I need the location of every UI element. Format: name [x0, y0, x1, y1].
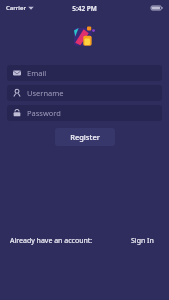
staticText: Register	[70, 132, 100, 142]
staticText: Sign In	[131, 236, 154, 246]
button[interactable]: Password	[7, 105, 162, 121]
staticText: Already have an account:	[10, 236, 93, 246]
button[interactable]: Username	[7, 85, 162, 101]
button[interactable]: Register	[55, 128, 115, 146]
staticText: Email	[27, 68, 47, 78]
other: Password	[13, 109, 21, 117]
staticText: Carrier	[6, 4, 26, 12]
staticText: Password	[27, 108, 61, 118]
other: Username	[13, 89, 21, 97]
button[interactable]: Email	[7, 65, 162, 81]
staticText: Username	[27, 88, 64, 98]
staticText: 5:42 PM	[72, 4, 97, 13]
other: App logo	[74, 26, 95, 47]
other: Email	[13, 69, 21, 77]
button[interactable]: Sign In	[128, 234, 157, 248]
